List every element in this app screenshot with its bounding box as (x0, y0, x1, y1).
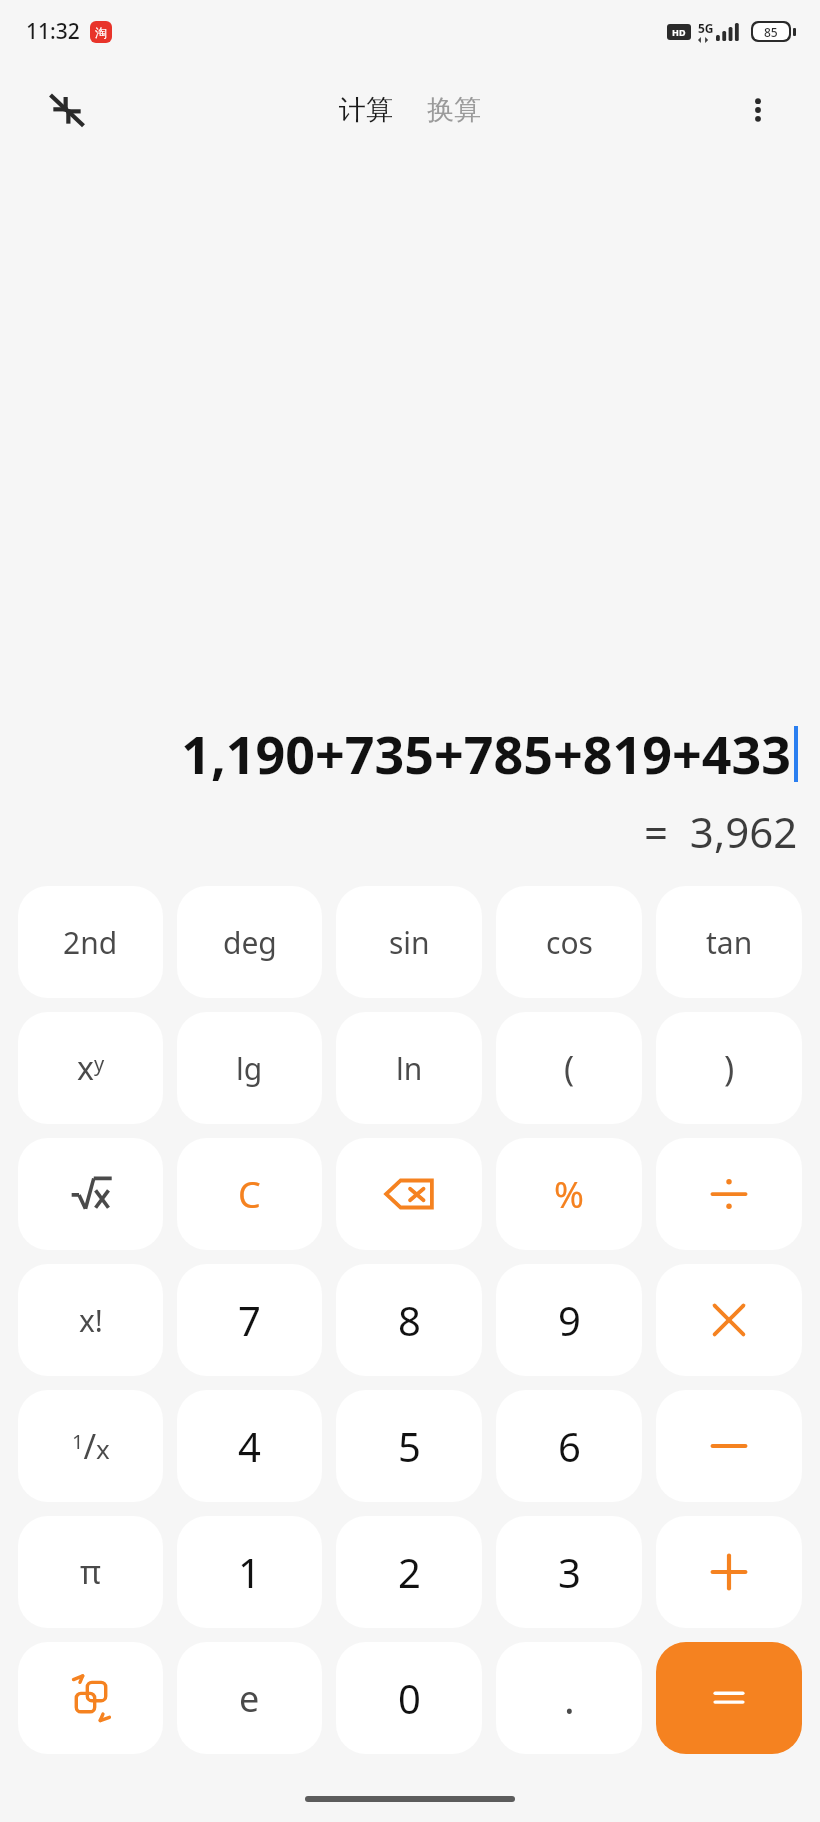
staticText: 85 (764, 24, 778, 40)
staticText: tan (706, 922, 753, 963)
staticText: 1,190+735+785+819+433 (181, 718, 791, 789)
button[interactable]: tan (656, 886, 802, 998)
button[interactable]: 9 (496, 1264, 642, 1376)
staticText: 5 (398, 1419, 421, 1473)
button[interactable]: 0 (336, 1642, 482, 1754)
staticText: 1 (238, 1545, 261, 1599)
button[interactable]: C (177, 1138, 322, 1250)
button[interactable]: More options (732, 84, 784, 136)
button[interactable]: deg (177, 886, 322, 998)
button[interactable]: 6 (496, 1390, 642, 1502)
button[interactable]: 计算 (333, 85, 399, 135)
staticText: deg (223, 922, 277, 963)
button[interactable]: Minus (656, 1390, 802, 1502)
button[interactable]: ) (656, 1012, 802, 1124)
staticText: % (554, 1170, 584, 1219)
button[interactable]: 2 (336, 1516, 482, 1628)
staticText: 9 (558, 1293, 581, 1347)
staticText: sin (389, 922, 430, 963)
staticText: e (239, 1674, 260, 1723)
button[interactable] (656, 1642, 802, 1754)
button[interactable]: e (177, 1642, 322, 1754)
button[interactable]: 5 (336, 1390, 482, 1502)
button[interactable]: x! (18, 1264, 163, 1376)
button[interactable]: 8 (336, 1264, 482, 1376)
staticText: 计算 (339, 93, 393, 127)
button[interactable]: Power (18, 1012, 163, 1124)
button[interactable]: ( (496, 1012, 642, 1124)
button[interactable]: Square root (18, 1138, 163, 1250)
staticText: ln (396, 1048, 423, 1089)
staticText: ) (724, 1045, 735, 1091)
staticText: cos (546, 922, 593, 963)
button[interactable]: Collapse (40, 83, 94, 137)
staticText: xy (77, 1046, 105, 1090)
staticText: 淘 (95, 25, 107, 40)
button[interactable]: Plus (656, 1516, 802, 1628)
button[interactable]: % (496, 1138, 642, 1250)
staticText: HD (672, 26, 686, 38)
staticText: 2nd (63, 922, 118, 963)
button[interactable]: 4 (177, 1390, 322, 1502)
button[interactable]: Divide (656, 1138, 802, 1250)
staticText: 1/x (72, 1423, 110, 1469)
staticText: 4 (238, 1419, 261, 1473)
button[interactable]: Unit conversion (18, 1642, 163, 1754)
staticText: C (238, 1170, 261, 1219)
staticText: 11:32 (26, 17, 80, 46)
button[interactable]: cos (496, 886, 642, 998)
button[interactable]: Multiply (656, 1264, 802, 1376)
staticText: ( (564, 1045, 575, 1091)
button[interactable]: . (496, 1642, 642, 1754)
button[interactable]: 3 (496, 1516, 642, 1628)
staticText: 3 (558, 1545, 581, 1599)
staticText: 5G (698, 20, 714, 36)
staticText: . (564, 1671, 575, 1725)
staticText: 6 (558, 1419, 581, 1473)
staticText: = 3,962 (644, 803, 798, 860)
staticText: 换算 (427, 93, 481, 127)
button[interactable]: Reciprocal (18, 1390, 163, 1502)
button[interactable]: lg (177, 1012, 322, 1124)
staticText: lg (236, 1048, 263, 1089)
button[interactable]: 7 (177, 1264, 322, 1376)
button[interactable]: ln (336, 1012, 482, 1124)
staticText: 2 (398, 1545, 421, 1599)
button[interactable]: 1 (177, 1516, 322, 1628)
button[interactable]: sin (336, 886, 482, 998)
staticText: 7 (238, 1293, 261, 1347)
staticText: 0 (398, 1671, 421, 1725)
button[interactable]: Backspace (336, 1138, 482, 1250)
staticText: π (80, 1550, 101, 1594)
button[interactable]: 2nd (18, 886, 163, 998)
button[interactable]: π (18, 1516, 163, 1628)
staticText: 8 (398, 1293, 421, 1347)
button[interactable]: 换算 (421, 85, 487, 135)
staticText: x! (79, 1300, 103, 1341)
